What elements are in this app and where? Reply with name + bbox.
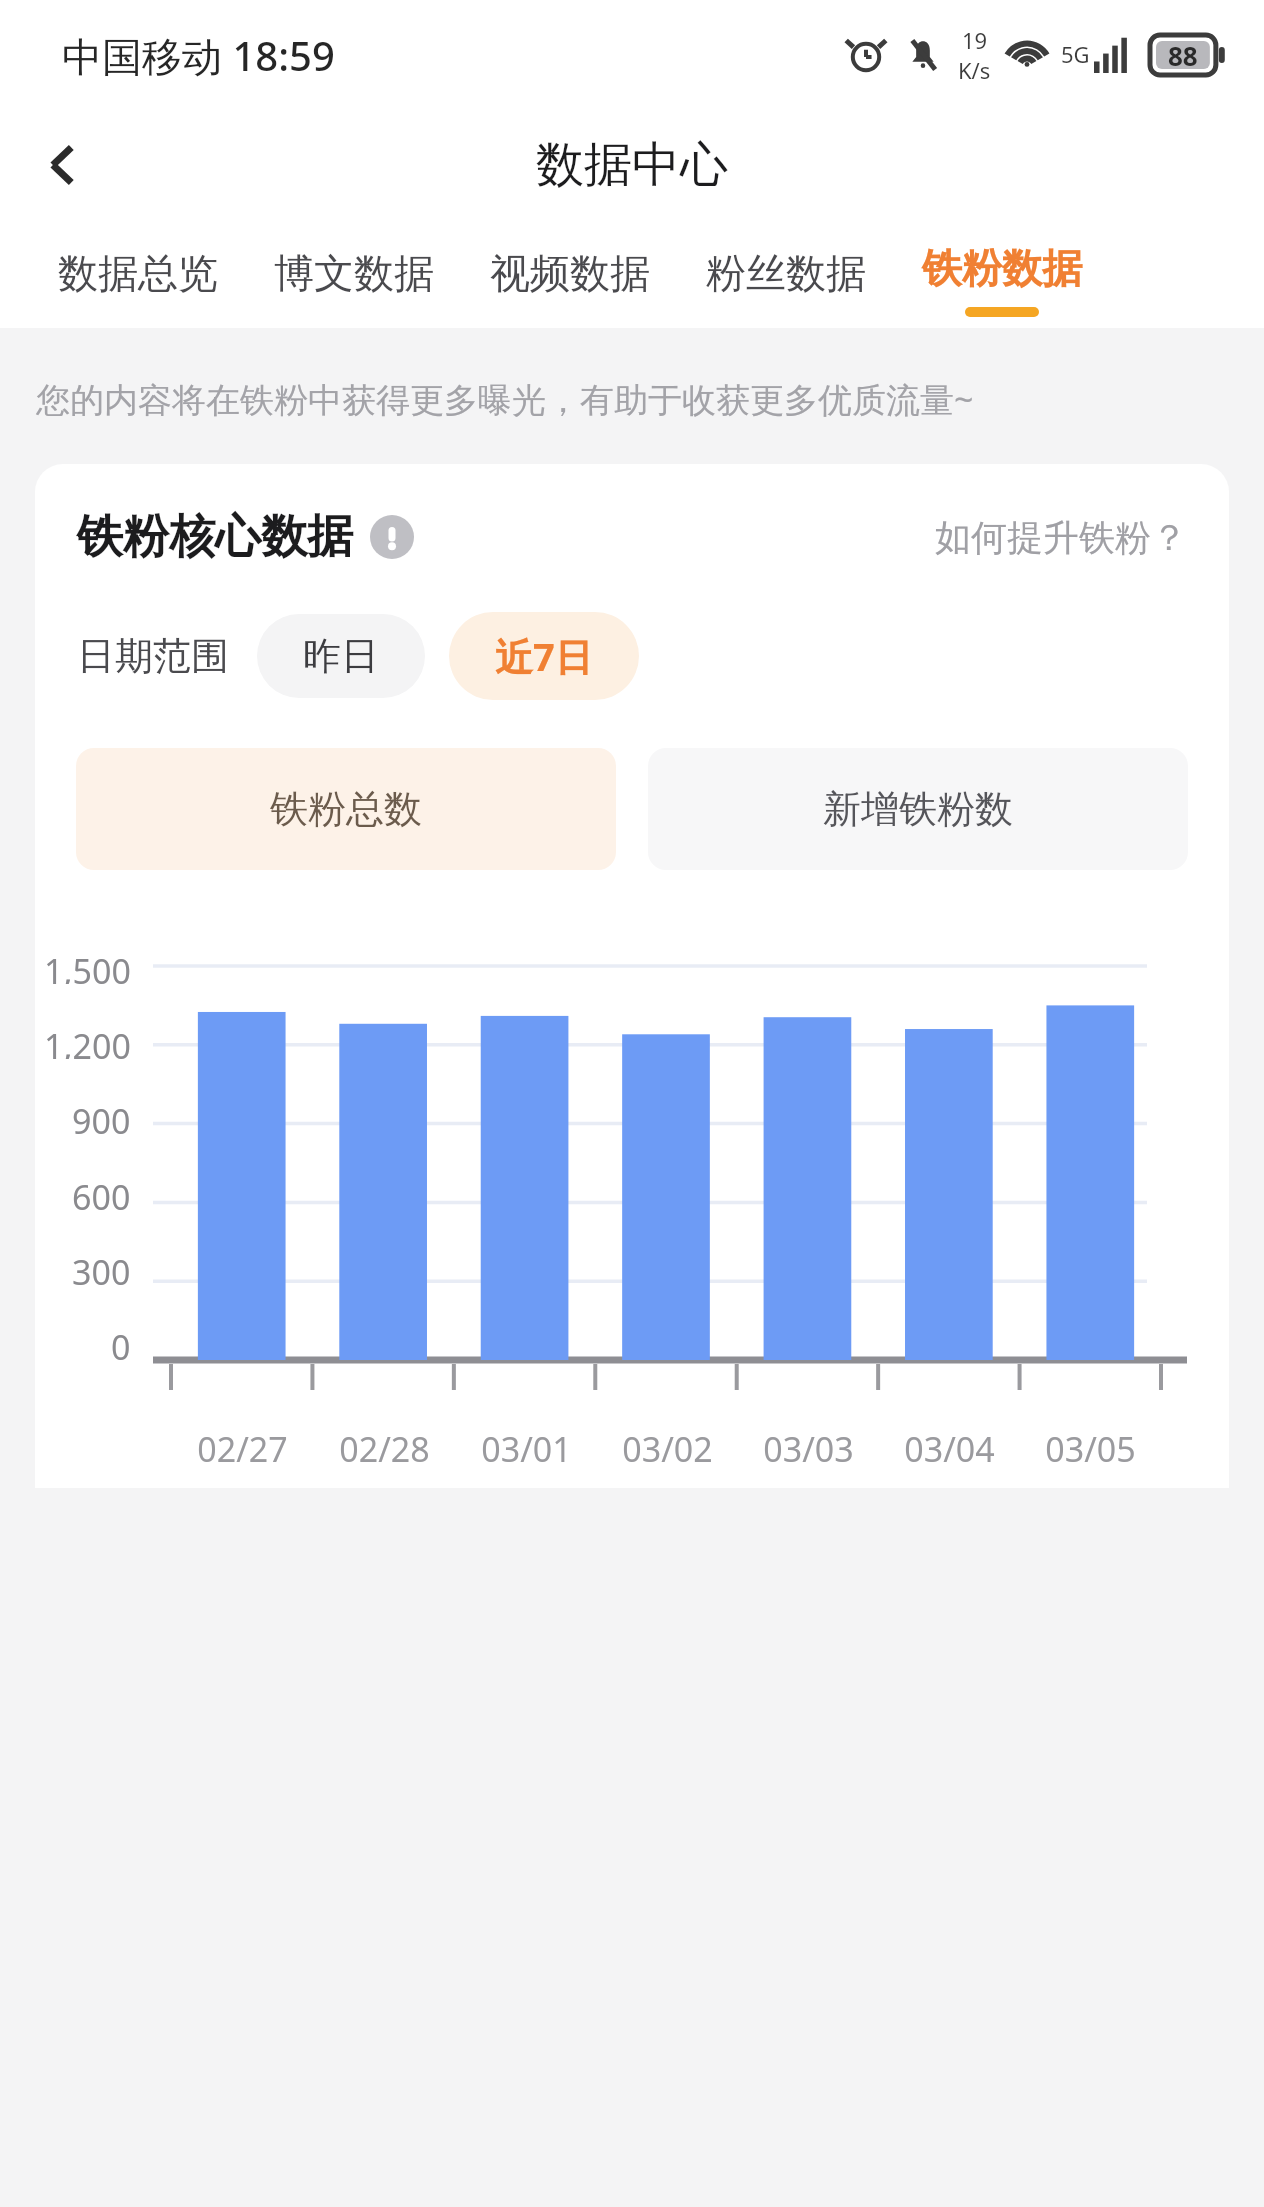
button[interactable]: 新增铁粉数 <box>648 748 1188 870</box>
button[interactable]: 昨日 <box>257 614 425 698</box>
staticText: 昨日 <box>303 632 379 680</box>
button[interactable]: 说明 <box>369 514 415 560</box>
staticText: 1,500 <box>44 948 131 984</box>
staticText: 铁粉数据 <box>922 243 1082 293</box>
staticText: 03/05 <box>1045 1426 1136 1472</box>
staticText: 03/02 <box>622 1426 713 1472</box>
button[interactable]: 如何提升铁粉？ <box>935 515 1187 560</box>
staticText: 近7日 <box>495 630 593 682</box>
staticText: 02/27 <box>197 1426 288 1472</box>
staticText: 88 <box>1168 38 1198 73</box>
staticText: 中国移动 18:59 <box>62 28 335 83</box>
staticText: 铁粉总数 <box>270 785 422 833</box>
button[interactable]: 博文数据 <box>246 220 462 328</box>
staticText: 03/03 <box>763 1426 854 1472</box>
staticText: 02/28 <box>339 1426 430 1472</box>
button[interactable]: Back <box>18 120 108 210</box>
staticText: 铁粉核心数据 <box>77 508 353 566</box>
button[interactable]: 铁粉总数 <box>76 748 616 870</box>
staticText: 19 <box>962 25 988 55</box>
staticText: 5G <box>1061 39 1090 69</box>
staticText: 粉丝数据 <box>706 248 866 298</box>
staticText: 300 <box>72 1249 131 1285</box>
staticText: 1,200 <box>44 1023 131 1059</box>
staticText: 600 <box>72 1174 131 1210</box>
staticText: 博文数据 <box>274 248 434 298</box>
button[interactable]: 近7日 <box>449 612 639 700</box>
button[interactable]: 视频数据 <box>462 220 678 328</box>
staticText: 如何提升铁粉？ <box>935 515 1187 560</box>
button[interactable]: 粉丝数据 <box>678 220 894 328</box>
staticText: 数据中心 <box>536 135 728 195</box>
staticText: 您的内容将在铁粉中获得更多曝光，有助于收获更多优质流量~ <box>36 376 974 422</box>
staticText: 0 <box>111 1324 131 1360</box>
button[interactable]: 铁粉数据 <box>894 220 1110 328</box>
staticText: K/s <box>958 55 991 85</box>
staticText: 日期范围 <box>77 632 229 680</box>
staticText: 03/04 <box>904 1426 995 1472</box>
staticText: 900 <box>72 1098 131 1134</box>
staticText: 新增铁粉数 <box>823 785 1013 833</box>
staticText: 视频数据 <box>490 248 650 298</box>
button[interactable]: 数据总览 <box>30 220 246 328</box>
staticText: 数据总览 <box>58 248 218 298</box>
staticText: 03/01 <box>481 1426 572 1472</box>
